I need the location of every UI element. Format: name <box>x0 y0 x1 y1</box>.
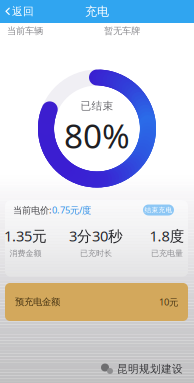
staticText: 10元 <box>159 296 178 308</box>
staticText: 预充电金额 <box>15 296 60 308</box>
staticText: 已充时长 <box>80 248 112 258</box>
staticText: 结束充电 <box>144 206 172 214</box>
staticText: 已结束 <box>80 99 113 112</box>
button[interactable]: 返回 <box>0 0 34 23</box>
staticText: 消费金额 <box>9 248 41 258</box>
staticText: 当前车辆 <box>7 25 43 37</box>
staticText: 1.35元 <box>4 226 47 245</box>
staticText: 返回 <box>12 5 34 18</box>
staticText: 1.8度 <box>149 226 184 245</box>
staticText: 昆明规划建设 <box>117 362 183 375</box>
staticText: 暂无车牌 <box>104 25 140 37</box>
button[interactable]: 结束充电 <box>143 204 174 215</box>
staticText: 当前电价: <box>13 204 52 216</box>
staticText: 3分30秒 <box>69 226 123 245</box>
staticText: 0.75元/度 <box>52 204 91 216</box>
staticText: 80% <box>64 113 130 158</box>
staticText: 充电 <box>85 4 109 19</box>
staticText: 已充电量 <box>151 248 183 258</box>
